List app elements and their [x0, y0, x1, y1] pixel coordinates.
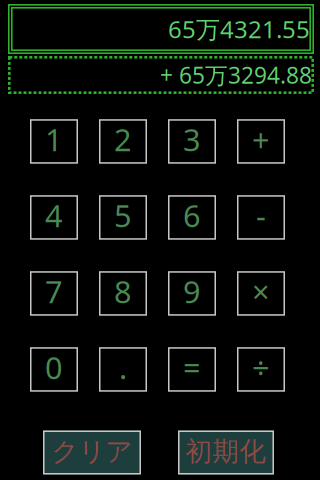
staticText: 6 — [183, 195, 201, 236]
button[interactable]: = — [168, 347, 216, 392]
staticText: 3 — [183, 119, 201, 160]
button[interactable]: 2 — [99, 119, 147, 164]
staticText: 1 — [45, 119, 63, 160]
button[interactable]: 8 — [99, 271, 147, 316]
staticText: + — [252, 119, 270, 160]
button[interactable]: + — [237, 119, 285, 164]
staticText: クリア — [51, 435, 132, 468]
staticText: ÷ — [252, 347, 270, 388]
button[interactable]: 初期化 — [178, 430, 274, 474]
staticText: + 65万3294.88 — [160, 60, 312, 90]
button[interactable]: 3 — [168, 119, 216, 164]
button[interactable]: 4 — [30, 195, 78, 240]
button[interactable]: 1 — [30, 119, 78, 164]
button[interactable]: 5 — [99, 195, 147, 240]
staticText: . — [119, 347, 127, 388]
button[interactable]: . — [99, 347, 147, 392]
staticText: 初期化 — [185, 435, 266, 468]
staticText: 4 — [45, 195, 63, 236]
button[interactable]: - — [237, 195, 285, 240]
staticText: 65万4321.55 — [168, 13, 310, 45]
button[interactable]: 9 — [168, 271, 216, 316]
staticText: × — [252, 271, 270, 312]
button[interactable]: 0 — [30, 347, 78, 392]
staticText: 5 — [114, 195, 132, 236]
staticText: 7 — [45, 271, 63, 312]
staticText: 8 — [114, 271, 132, 312]
button[interactable]: 7 — [30, 271, 78, 316]
button[interactable]: ÷ — [237, 347, 285, 392]
staticText: - — [256, 195, 266, 236]
staticText: 2 — [114, 119, 132, 160]
button[interactable]: × — [237, 271, 285, 316]
staticText: 0 — [45, 347, 63, 388]
staticText: = — [183, 347, 201, 388]
button[interactable]: 6 — [168, 195, 216, 240]
staticText: 9 — [183, 271, 201, 312]
button[interactable]: クリア — [43, 430, 141, 474]
